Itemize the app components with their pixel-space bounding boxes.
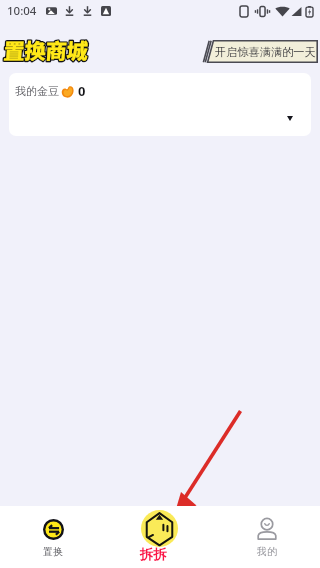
staticText: 10:04 — [7, 3, 37, 19]
staticText: 0 — [78, 82, 86, 100]
button[interactable]: 展开 — [282, 110, 298, 126]
staticText: 我的金豆 — [15, 84, 59, 98]
button[interactable]: 我的金豆 — [9, 73, 311, 136]
button[interactable]: 拆拆 — [106, 506, 213, 568]
staticText: 我的 — [257, 545, 277, 558]
staticText: 拆拆 — [140, 546, 167, 563]
button[interactable]: 我的 — [213, 506, 320, 568]
staticText: 开启惊喜满满的一天 — [215, 45, 316, 59]
button[interactable]: 置换 — [0, 506, 106, 568]
staticText: 置换 — [43, 545, 63, 558]
